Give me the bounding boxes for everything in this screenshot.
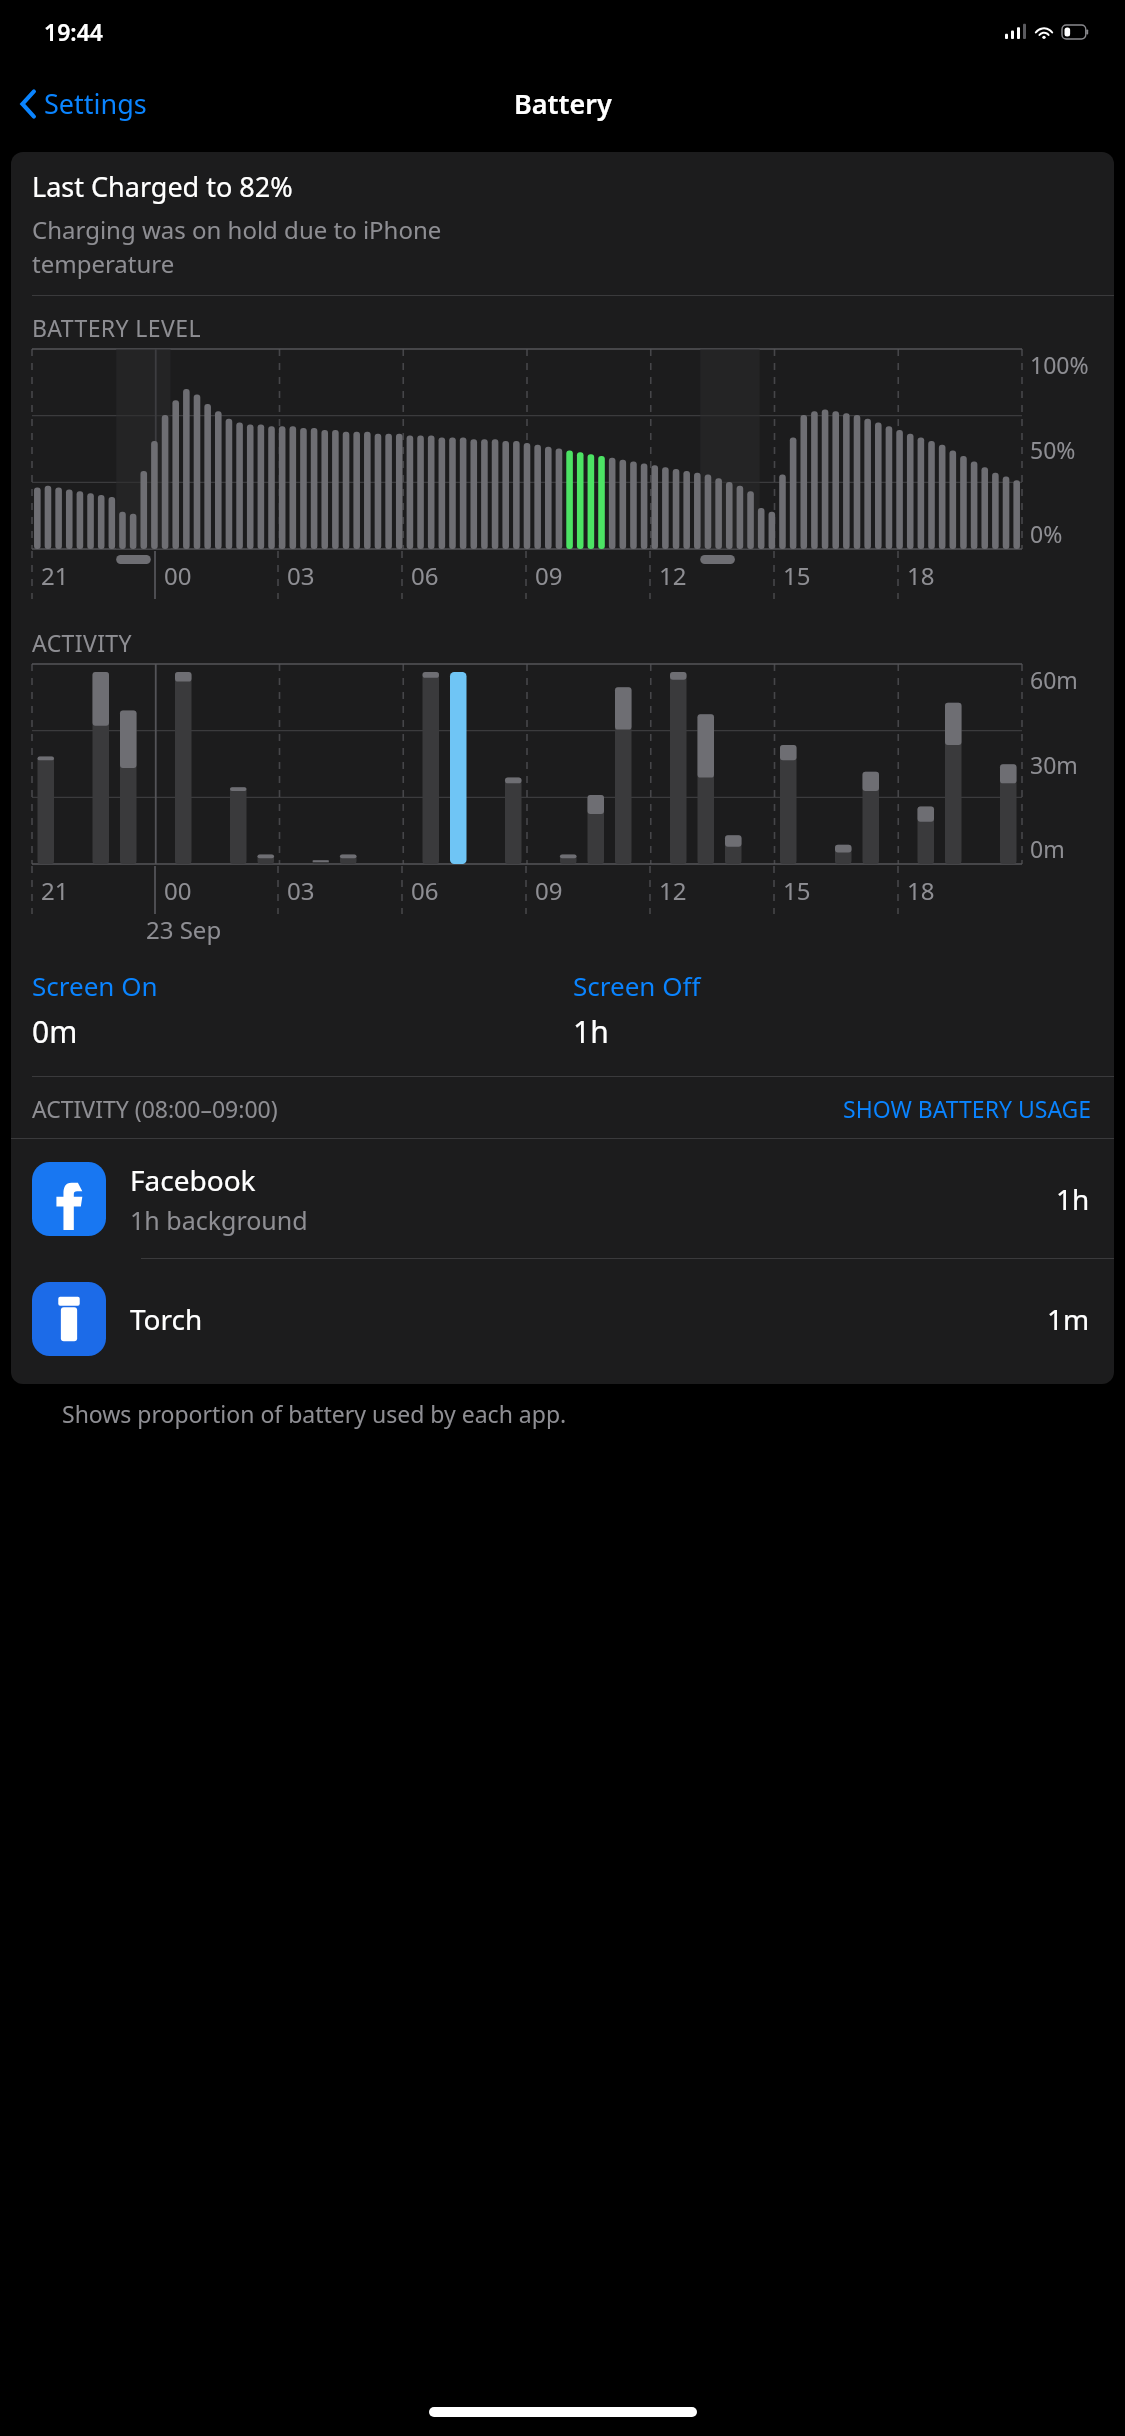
- staticText: 15: [783, 874, 811, 907]
- staticText: BATTERY LEVEL: [32, 312, 201, 343]
- staticText: 0m: [1030, 833, 1065, 864]
- button[interactable]: Torch: [11, 1259, 1114, 1378]
- staticText: 60m: [1030, 664, 1078, 695]
- staticText: 09: [535, 559, 563, 592]
- staticText: Screen On: [32, 968, 158, 1003]
- staticText: 1m: [1047, 1300, 1090, 1338]
- staticText: 18: [907, 559, 935, 592]
- staticText: 03: [287, 874, 315, 907]
- staticText: SHOW BATTERY USAGE: [843, 1093, 1092, 1124]
- staticText: 15: [783, 559, 811, 592]
- staticText: 21: [41, 559, 69, 592]
- button[interactable]: SHOW BATTERY USAGE: [841, 1091, 1094, 1126]
- staticText: Last Charged to 82%: [32, 168, 293, 205]
- staticText: 1h background: [130, 1203, 308, 1237]
- staticText: Shows proportion of battery used by each…: [62, 1398, 567, 1429]
- staticText: Facebook: [130, 1161, 256, 1199]
- staticText: 06: [411, 559, 439, 592]
- button[interactable]: Settings: [14, 79, 153, 128]
- staticText: Battery: [514, 85, 612, 122]
- button[interactable]: Facebook: [11, 1139, 1114, 1258]
- staticText: 12: [659, 874, 687, 907]
- staticText: 09: [535, 874, 563, 907]
- staticText: 00: [164, 874, 192, 907]
- staticText: 100%: [1030, 349, 1089, 380]
- staticText: 19:44: [44, 16, 103, 47]
- staticText: 00: [164, 559, 192, 592]
- staticText: ACTIVITY (08:00–09:00): [32, 1093, 278, 1124]
- staticText: 0%: [1030, 518, 1063, 549]
- staticText: Torch: [130, 1300, 203, 1338]
- staticText: 06: [411, 874, 439, 907]
- staticText: 18: [907, 874, 935, 907]
- staticText: 50%: [1030, 434, 1076, 465]
- staticText: 0m: [32, 1011, 78, 1052]
- staticText: 1h: [573, 1011, 609, 1052]
- staticText: ACTIVITY: [32, 627, 132, 658]
- staticText: Screen Off: [573, 968, 701, 1003]
- staticText: 23 Sep: [146, 913, 222, 946]
- staticText: 1h: [1056, 1180, 1090, 1218]
- staticText: 21: [41, 874, 69, 907]
- staticText: 12: [659, 559, 687, 592]
- staticText: 03: [287, 559, 315, 592]
- staticText: Settings: [44, 85, 147, 122]
- staticText: Charging was on hold due to iPhone tempe…: [32, 213, 442, 280]
- staticText: 30m: [1030, 749, 1078, 780]
